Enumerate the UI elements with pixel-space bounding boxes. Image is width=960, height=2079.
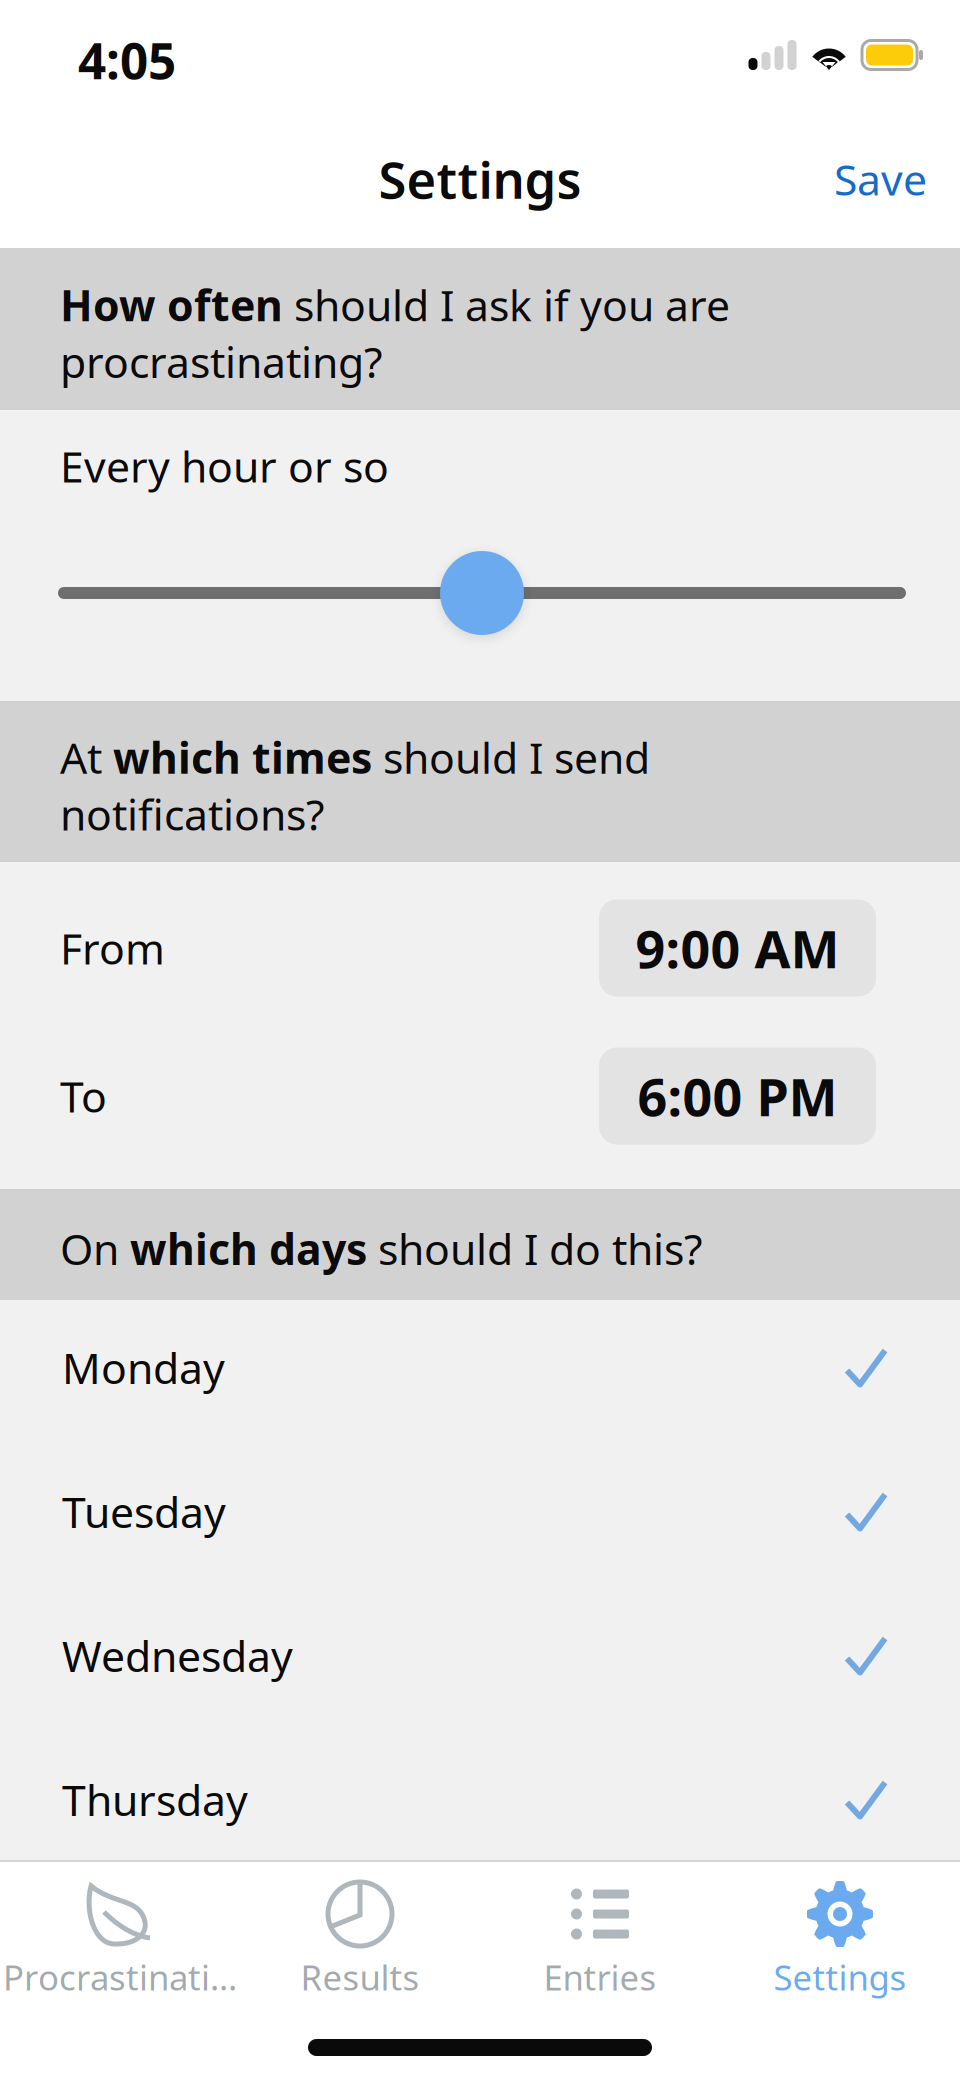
- staticText: On which days should I do this?: [60, 1220, 703, 1277]
- button[interactable]: Tuesday: [0, 1439, 960, 1583]
- staticText: Procrastinati...: [3, 1954, 237, 2000]
- button[interactable]: 9:00 AM: [599, 899, 876, 996]
- staticText: From: [60, 920, 165, 976]
- staticText: Save: [834, 151, 927, 207]
- staticText: Wednesday: [62, 1627, 293, 1684]
- button[interactable]: Settings: [720, 1862, 960, 2014]
- staticText: Entries: [543, 1954, 656, 2000]
- staticText: Monday: [62, 1339, 225, 1396]
- staticText: 6:00 PM: [637, 1061, 837, 1131]
- button[interactable]: 6:00 PM: [599, 1047, 876, 1144]
- button[interactable]: Monday: [0, 1295, 960, 1439]
- staticText: Thursday: [62, 1771, 248, 1828]
- staticText: Tuesday: [62, 1483, 226, 1540]
- button[interactable]: Results: [240, 1862, 480, 2014]
- staticText: 9:00 AM: [635, 913, 839, 983]
- button[interactable]: Entries: [480, 1862, 720, 2014]
- staticText: Every hour or so: [60, 438, 389, 494]
- button[interactable]: Procrastinati...: [0, 1862, 240, 2014]
- button[interactable]: Thursday: [0, 1727, 960, 1871]
- staticText: 4:05: [78, 27, 176, 93]
- staticText: How often should I ask if you are procra…: [60, 276, 730, 390]
- button[interactable]: Wednesday: [0, 1583, 960, 1727]
- staticText: Settings: [773, 1954, 906, 2000]
- button[interactable]: Reminder frequency: [0, 548, 960, 638]
- staticText: Results: [300, 1954, 419, 2000]
- staticText: At which times should I send notificatio…: [60, 729, 650, 842]
- button[interactable]: Save: [812, 133, 949, 225]
- staticText: To: [60, 1068, 107, 1124]
- staticText: Settings: [378, 145, 581, 213]
